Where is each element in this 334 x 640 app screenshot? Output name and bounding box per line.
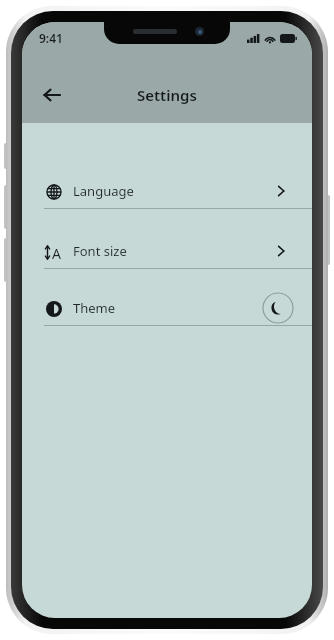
staticText: Font size <box>73 242 127 260</box>
staticText: Language <box>73 182 134 200</box>
staticText: Settings <box>137 85 197 105</box>
button[interactable]: Theme <box>22 291 312 325</box>
button[interactable]: A <box>22 234 312 268</box>
button[interactable]: Open <box>268 178 294 204</box>
staticText: 9:41 <box>39 30 63 46</box>
button[interactable]: Dark theme <box>262 292 294 324</box>
button[interactable]: Language <box>22 174 312 208</box>
button[interactable]: Back <box>32 75 72 115</box>
staticText: Theme <box>73 299 116 317</box>
button[interactable]: Open <box>268 238 294 264</box>
staticText: A <box>52 244 61 260</box>
